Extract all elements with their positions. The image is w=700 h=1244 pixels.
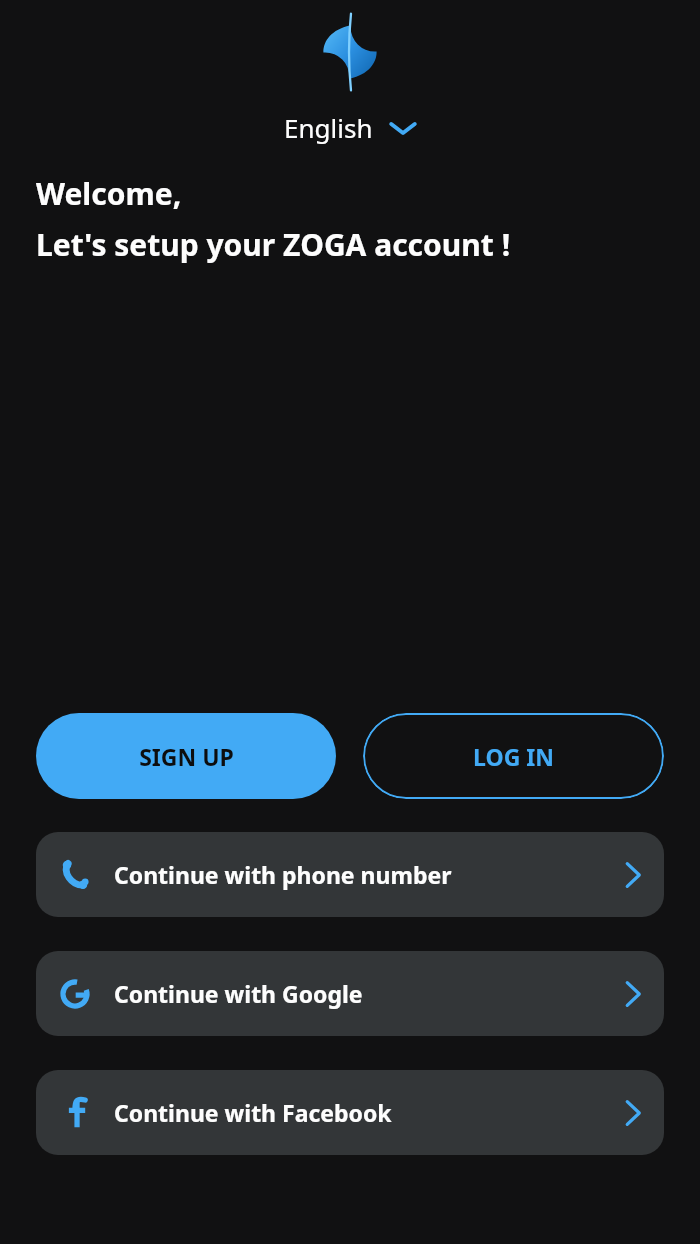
staticText: Continue with Facebook (114, 1097, 392, 1128)
button[interactable]: English (276, 106, 425, 149)
button[interactable]: SIGN UP (36, 713, 336, 799)
button[interactable]: LOG IN (363, 713, 664, 799)
button[interactable]: Continue with Facebook (36, 1070, 664, 1155)
staticText: LOG IN (473, 741, 554, 772)
staticText: Continue with phone number (114, 859, 452, 890)
staticText: English (284, 110, 373, 145)
staticText: Welcome, (36, 173, 182, 214)
staticText: SIGN UP (139, 741, 234, 772)
staticText: Let's setup your ZOGA account ! (36, 224, 511, 265)
button[interactable]: Continue with Google (36, 951, 664, 1036)
button[interactable]: Continue with phone number (36, 832, 664, 917)
staticText: Continue with Google (114, 978, 363, 1009)
